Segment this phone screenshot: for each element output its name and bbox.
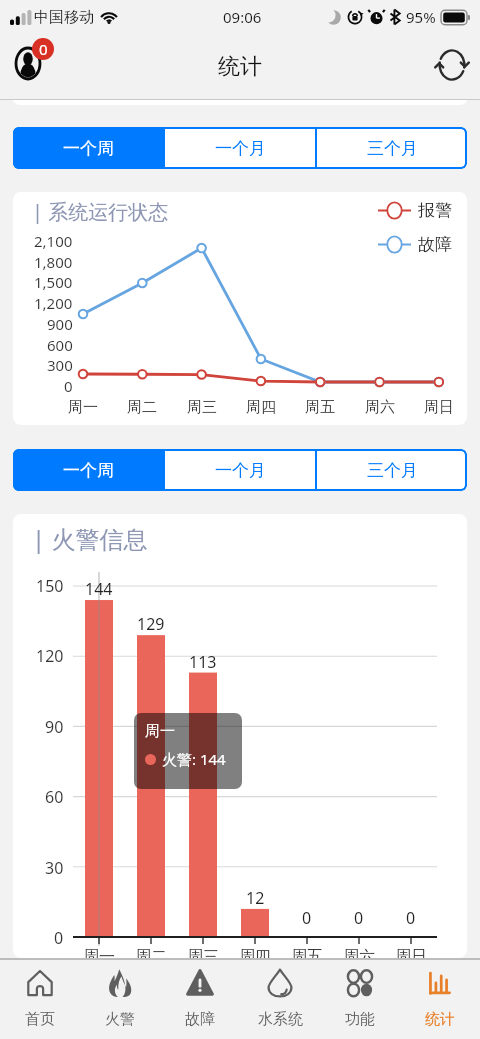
button[interactable]: 水系统 xyxy=(240,960,320,1039)
staticText: 周日 xyxy=(424,398,454,417)
staticText: 0 xyxy=(54,927,64,949)
staticText: 周四 xyxy=(246,398,276,417)
staticText: 功能 xyxy=(345,1010,375,1029)
staticText: 30 xyxy=(45,857,64,879)
staticText: 150 xyxy=(36,575,64,597)
staticText: 周五 xyxy=(291,947,323,958)
staticText: 周二 xyxy=(127,398,157,417)
staticText: 一个周 xyxy=(63,138,114,159)
staticText: 0 xyxy=(406,907,416,929)
button[interactable]: Refresh xyxy=(430,43,473,86)
staticText: 60 xyxy=(45,786,64,808)
staticText: 一个周 xyxy=(63,460,114,481)
staticText: 周三 xyxy=(187,398,217,417)
staticText: 1,800 xyxy=(34,252,73,272)
staticText: 09:06 xyxy=(223,7,262,27)
button[interactable]: 一个月 xyxy=(165,127,315,169)
staticText: 900 xyxy=(47,314,73,334)
staticText: 144 xyxy=(85,578,113,600)
staticText: 一个月 xyxy=(215,138,266,159)
button[interactable]: 火警 xyxy=(80,960,160,1039)
staticText: 600 xyxy=(47,335,73,355)
staticText: | 系统运行状态 xyxy=(32,198,169,225)
staticText: 一个月 xyxy=(215,460,266,481)
staticText: 火警: 144 xyxy=(162,749,226,769)
staticText: 0 xyxy=(39,39,48,59)
staticText: 三个月 xyxy=(367,460,418,481)
staticText: 0 xyxy=(302,907,312,929)
staticText: 周六 xyxy=(365,398,395,417)
staticText: 120 xyxy=(36,645,64,667)
staticText: 周四 xyxy=(239,947,271,958)
button[interactable]: 一个月 xyxy=(165,449,315,491)
staticText: 火警 xyxy=(105,1010,135,1029)
staticText: 95% xyxy=(406,7,436,27)
staticText: 首页 xyxy=(25,1010,55,1029)
button[interactable]: Profile xyxy=(4,29,60,87)
staticText: 周一 xyxy=(83,947,115,958)
staticText: 0 xyxy=(64,376,73,396)
staticText: 周一 xyxy=(145,722,175,741)
staticText: 周三 xyxy=(187,947,219,958)
staticText: 故障 xyxy=(185,1010,215,1029)
staticText: | 火警信息 xyxy=(32,522,148,555)
staticText: 周日 xyxy=(395,947,427,958)
button[interactable]: 功能 xyxy=(320,960,400,1039)
staticText: 周二 xyxy=(135,947,167,958)
staticText: 统计 xyxy=(425,1010,455,1029)
staticText: 90 xyxy=(45,716,64,738)
staticText: 统计 xyxy=(218,53,262,81)
staticText: 周五 xyxy=(305,398,335,417)
staticText: 报警 xyxy=(418,200,452,221)
staticText: 129 xyxy=(137,613,165,635)
staticText: 2,100 xyxy=(34,231,73,251)
button[interactable]: 统计 xyxy=(400,960,480,1039)
staticText: 水系统 xyxy=(258,1010,303,1029)
staticText: 113 xyxy=(189,651,217,673)
staticText: 周一 xyxy=(68,398,98,417)
button[interactable]: 三个月 xyxy=(317,449,467,491)
staticText: 0 xyxy=(354,907,364,929)
staticText: 12 xyxy=(246,887,265,909)
staticText: 周六 xyxy=(343,947,375,958)
button[interactable]: 首页 xyxy=(0,960,80,1039)
button[interactable]: 故障 xyxy=(160,960,240,1039)
staticText: 1,500 xyxy=(34,272,73,292)
staticText: 三个月 xyxy=(367,138,418,159)
staticText: 中国移动 xyxy=(34,8,94,27)
staticText: 故障 xyxy=(418,234,452,255)
staticText: 300 xyxy=(47,355,73,375)
staticText: 1,200 xyxy=(34,293,73,313)
button[interactable]: 一个周 xyxy=(13,449,163,491)
button[interactable]: 一个周 xyxy=(13,127,163,169)
button[interactable]: 三个月 xyxy=(317,127,467,169)
